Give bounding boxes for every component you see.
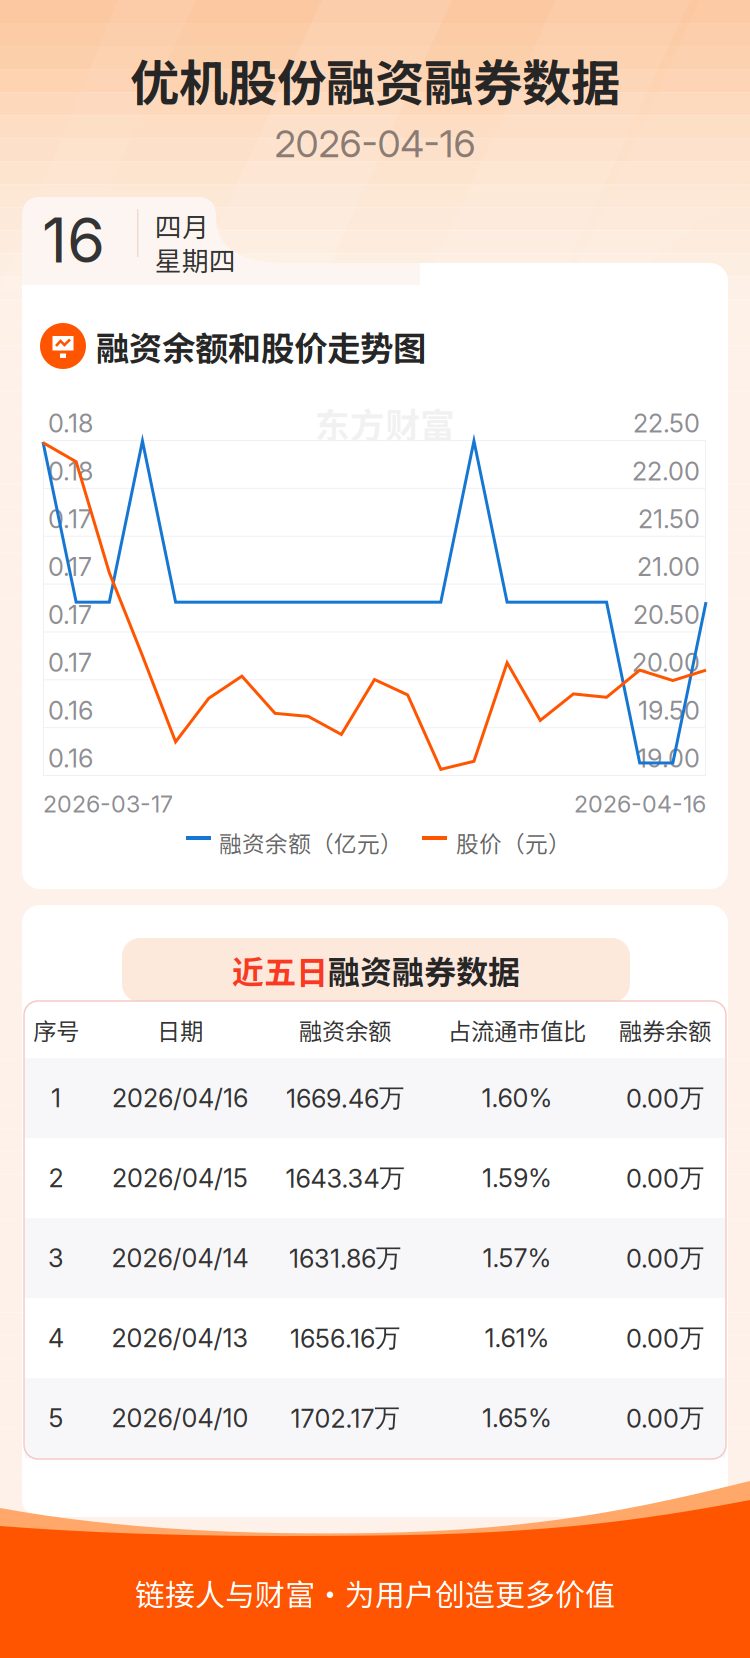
staticText: 融资余额和股价走势图	[96, 322, 426, 370]
staticText: 星期四	[155, 240, 236, 268]
staticText: 1.61%	[484, 1323, 549, 1353]
staticText: 0.00万	[626, 1162, 704, 1194]
staticText: 16	[42, 203, 105, 261]
staticText: 2026/04/15	[112, 1163, 248, 1193]
staticText: 2026/04/16	[112, 1083, 248, 1113]
staticText: 1.60%	[481, 1083, 552, 1113]
staticText: 4	[48, 1323, 64, 1353]
staticText: 20.50	[633, 599, 700, 627]
staticText: 2026-03-17	[43, 790, 173, 818]
staticText: 0.17	[48, 552, 92, 580]
staticText: 四月	[155, 206, 209, 234]
staticText: 19.00	[637, 743, 700, 771]
staticText: 0.00万	[626, 1322, 704, 1354]
staticText: 0.16	[48, 743, 93, 771]
staticText: 0.00万	[626, 1082, 704, 1114]
staticText: 0.00万	[626, 1242, 704, 1274]
staticText: 股价（元）	[456, 826, 571, 852]
staticText: 2	[48, 1163, 63, 1193]
staticText: 0.17	[48, 504, 92, 532]
staticText: 融资余额	[299, 1013, 391, 1045]
staticText: 5	[48, 1403, 63, 1433]
staticText: 优机股份融资融券数据	[130, 44, 620, 100]
staticText: 3	[48, 1243, 64, 1273]
staticText: 1.57%	[482, 1243, 551, 1273]
staticText: 2026/04/13	[111, 1323, 248, 1353]
staticText: 0.18	[48, 456, 93, 484]
staticText: 东方财富	[315, 398, 455, 434]
staticText: 近五日	[232, 947, 328, 993]
staticText: 1	[51, 1083, 61, 1113]
staticText: 1.65%	[482, 1403, 552, 1433]
staticText: 22.00	[632, 456, 700, 484]
staticText: 0.17	[48, 647, 92, 675]
staticText: 1.59%	[482, 1163, 552, 1193]
staticText: 2026-04-16	[274, 121, 475, 163]
staticText: 1656.16万	[290, 1322, 400, 1354]
staticText: 19.50	[638, 695, 700, 723]
staticText: 0.16	[48, 695, 93, 723]
staticText: 1669.46万	[286, 1082, 404, 1114]
staticText: 融券余额	[619, 1013, 711, 1045]
staticText: 序号	[33, 1013, 79, 1045]
staticText: 2026/04/10	[111, 1403, 248, 1433]
staticText: 占流通市值比	[448, 1013, 586, 1045]
staticText: 0.18	[48, 408, 93, 436]
staticText: 2026/04/14	[111, 1243, 248, 1273]
staticText: 0.17	[48, 599, 92, 627]
staticText: 21.50	[638, 504, 700, 532]
staticText: 2026-04-16	[574, 790, 706, 818]
staticText: 融资余额（亿元）	[219, 826, 403, 852]
staticText: 日期	[157, 1013, 203, 1045]
staticText: 0.00万	[626, 1402, 704, 1434]
staticText: 融资融券数据	[328, 947, 520, 993]
staticText: 22.50	[633, 408, 700, 436]
staticText: 1643.34万	[285, 1162, 404, 1194]
staticText: 21.00	[637, 552, 700, 580]
staticText: 1702.17万	[290, 1402, 399, 1434]
staticText: 20.00	[632, 647, 700, 675]
staticText: 链接人与财富·为用户创造更多价值	[135, 1571, 615, 1615]
staticText: 1631.86万	[289, 1242, 401, 1274]
